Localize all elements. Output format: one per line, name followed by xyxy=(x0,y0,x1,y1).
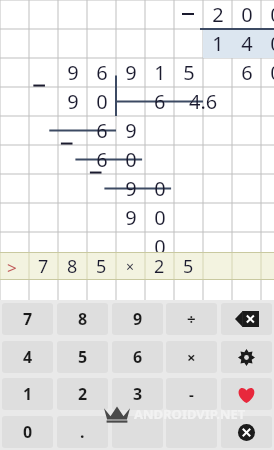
staticText: 1 xyxy=(212,30,224,57)
staticText: 6 xyxy=(154,88,166,115)
button[interactable]: Backspace xyxy=(221,303,272,335)
button[interactable] xyxy=(166,416,217,448)
button[interactable]: > xyxy=(0,252,274,280)
staticText: 5 xyxy=(78,346,88,368)
staticText: 6 xyxy=(96,117,108,144)
staticText: 0 xyxy=(154,233,166,260)
staticText: 9 xyxy=(67,59,79,86)
staticText: × xyxy=(126,257,135,276)
staticText: 5 xyxy=(96,254,107,279)
staticText: 6 xyxy=(96,59,108,86)
staticText: 2 xyxy=(78,383,88,405)
staticText: . xyxy=(80,421,85,443)
staticText: 9 xyxy=(125,175,137,202)
button[interactable]: 8 xyxy=(57,303,108,335)
staticText: 9 xyxy=(125,59,137,86)
staticText: 4.6 xyxy=(189,88,218,115)
staticText: 4 xyxy=(241,30,253,57)
button[interactable]: × xyxy=(166,341,217,373)
staticText: 9 xyxy=(125,117,137,144)
staticText: - xyxy=(189,384,194,404)
staticText: 7 xyxy=(23,308,33,330)
staticText: 0 xyxy=(270,30,274,57)
button[interactable]: 5 xyxy=(57,341,108,373)
staticText: 9 xyxy=(133,308,143,330)
staticText: 3 xyxy=(133,383,143,405)
button[interactable]: 2 xyxy=(57,378,108,410)
staticText: 5 xyxy=(183,59,195,86)
staticText: 9 xyxy=(67,88,79,115)
staticText: 4 xyxy=(23,346,33,368)
button[interactable]: Favorites xyxy=(221,378,272,410)
staticText: 0 xyxy=(241,1,253,28)
staticText: > xyxy=(7,256,17,279)
button[interactable]: 0 xyxy=(2,416,53,448)
button[interactable]: ÷ xyxy=(166,303,217,335)
button[interactable] xyxy=(112,416,163,448)
staticText: 7 xyxy=(38,254,49,279)
staticText: 9 xyxy=(125,204,137,231)
staticText: 0 xyxy=(154,204,166,231)
staticText: 0 xyxy=(23,421,33,443)
staticText: 0 xyxy=(270,59,274,86)
staticText: 8 xyxy=(78,308,88,330)
staticText: 0 xyxy=(125,146,137,173)
button[interactable]: 9 xyxy=(112,303,163,335)
staticText: 0 xyxy=(270,1,274,28)
staticText: 6 xyxy=(241,59,253,86)
staticText: 2 xyxy=(154,254,165,279)
button[interactable]: - xyxy=(166,378,217,410)
staticText: 6 xyxy=(133,346,143,368)
button[interactable]: . xyxy=(57,416,108,448)
staticText: × xyxy=(187,347,196,367)
button[interactable]: Settings xyxy=(221,341,272,373)
button[interactable]: 3 xyxy=(112,378,163,410)
button[interactable]: Close xyxy=(221,416,272,448)
staticText: ANDROIDVIP.NET xyxy=(134,405,246,423)
button[interactable]: 6 xyxy=(112,341,163,373)
staticText: 8 xyxy=(67,254,78,279)
staticText: 5 xyxy=(183,254,194,279)
button[interactable]: 4 xyxy=(2,341,53,373)
staticText: 1 xyxy=(23,383,33,405)
button[interactable]: 1 xyxy=(2,378,53,410)
staticText: 0 xyxy=(154,175,166,202)
staticText: 2 xyxy=(212,1,224,28)
staticText: ÷ xyxy=(187,309,196,329)
staticText: 0 xyxy=(96,88,108,115)
staticText: 6 xyxy=(96,146,108,173)
button[interactable]: 7 xyxy=(2,303,53,335)
staticText: 1 xyxy=(154,59,166,86)
